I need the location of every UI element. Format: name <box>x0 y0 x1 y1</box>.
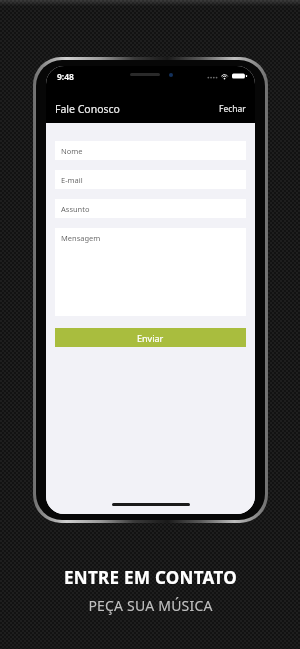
staticText: E-mail <box>61 175 83 185</box>
staticText: Enviar <box>137 332 164 344</box>
staticText: Nome <box>61 146 83 156</box>
button[interactable]: Enviar <box>55 328 246 347</box>
staticText: ENTRE EM CONTATO <box>64 566 237 589</box>
staticText: Fechar <box>219 103 246 115</box>
button[interactable]: Mensagem <box>55 228 246 316</box>
button[interactable]: E-mail <box>55 170 246 189</box>
staticText: Assunto <box>61 204 90 214</box>
button[interactable]: Assunto <box>55 199 246 218</box>
staticText: Mensagem <box>61 233 101 243</box>
staticText: 9:48 <box>57 71 74 83</box>
staticText: PEÇA SUA MÚSICA <box>88 596 213 615</box>
button[interactable]: Fechar <box>219 103 246 115</box>
staticText: Fale Conosco <box>55 102 120 116</box>
button[interactable]: Fale Conosco <box>55 102 120 116</box>
button[interactable]: Nome <box>55 141 246 160</box>
